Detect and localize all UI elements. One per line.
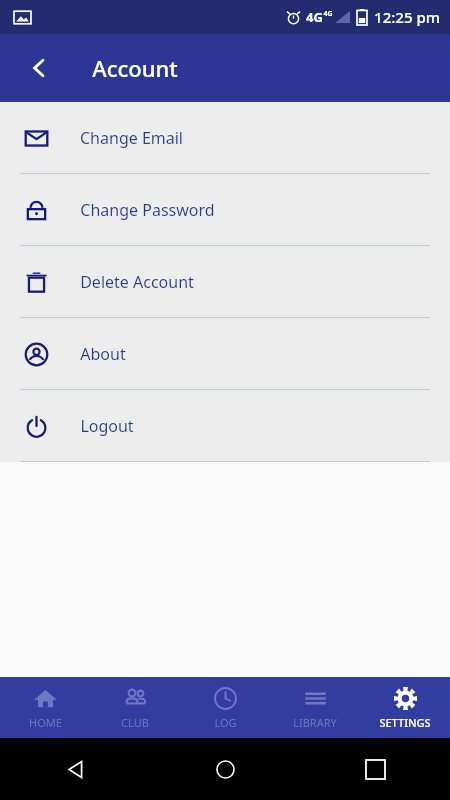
staticText: 4G [306,8,323,26]
button[interactable]: Change Email [0,102,450,173]
button[interactable]: About [0,318,450,389]
button[interactable]: Back [0,738,150,800]
staticText: 4G [323,9,333,19]
button[interactable]: CLUB [90,677,180,738]
staticText: LIBRARY [293,715,337,730]
button[interactable]: HOME [0,677,90,738]
staticText: 12:25 pm [374,7,440,27]
button[interactable]: LIBRARY [270,677,360,738]
button[interactable]: Logout [0,390,450,461]
button[interactable]: SETTINGS [360,677,450,738]
button[interactable]: Home [150,738,300,800]
staticText: Logout [80,415,134,437]
staticText: Change Email [80,127,183,149]
button[interactable]: Recent apps [300,738,450,800]
staticText: About [80,343,126,365]
button[interactable]: Delete Account [0,246,450,317]
staticText: SETTINGS [379,715,431,730]
staticText: HOME [29,715,62,730]
staticText: LOG [214,715,237,730]
staticText: Account [92,53,178,83]
staticText: CLUB [121,715,149,730]
staticText: Change Password [80,199,215,221]
staticText: Delete Account [80,271,194,293]
button[interactable]: LOG [180,677,270,738]
button[interactable]: Change Password [0,174,450,245]
button[interactable]: Back [18,47,60,89]
